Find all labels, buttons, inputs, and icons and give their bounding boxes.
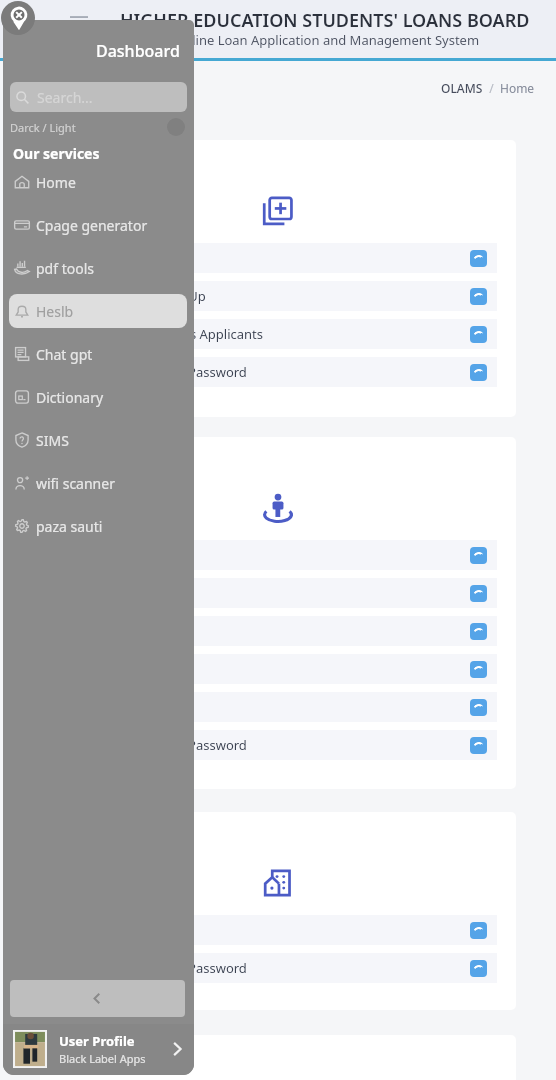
staticText: Our services bbox=[13, 144, 100, 163]
button[interactable]: Dictionary bbox=[9, 380, 187, 414]
staticText: Online Loan Application and Management S… bbox=[174, 31, 480, 49]
button[interactable]: Menu bbox=[66, 8, 92, 34]
button[interactable]: Loan Application bbox=[59, 243, 497, 273]
button[interactable]: User Profile bbox=[3, 1025, 194, 1073]
button[interactable]: SIMS bbox=[9, 423, 187, 457]
staticText: HIGHER EDUCATION STUDENTS' LOANS BOARD bbox=[120, 8, 530, 33]
staticText: pdf tools bbox=[36, 259, 94, 278]
staticText: Black Label Apps bbox=[59, 1051, 146, 1066]
button[interactable]: Retrieve Forgotten Password bbox=[59, 357, 497, 387]
staticText: paza sauti bbox=[36, 517, 103, 536]
button[interactable]: Retrieve Forgotten Password bbox=[59, 730, 497, 760]
button[interactable]: paza sauti bbox=[9, 509, 187, 543]
staticText: OLAMS bbox=[441, 80, 483, 96]
other: Open Retrieve Forgotten Password bbox=[470, 737, 487, 754]
button[interactable]: Loan Application bbox=[59, 540, 497, 570]
staticText: Cpage generator bbox=[36, 216, 148, 235]
other: Open Continuing Students Applicants bbox=[470, 326, 487, 343]
other: Open Verification bbox=[470, 699, 487, 716]
button[interactable]: Heslb bbox=[9, 294, 187, 328]
button[interactable]: Verification bbox=[59, 692, 497, 722]
button[interactable]: Sign Up bbox=[59, 616, 497, 646]
button[interactable]: Search... bbox=[10, 82, 187, 112]
staticText: Continuing Students Applicants bbox=[71, 325, 264, 343]
button[interactable]: Institution Portal bbox=[59, 915, 497, 945]
button[interactable]: Home bbox=[9, 165, 187, 199]
button[interactable]: Toggle dark light theme bbox=[167, 118, 185, 136]
staticText: Retrieve Forgotten Password bbox=[71, 959, 247, 977]
staticText: Chat gpt bbox=[36, 345, 93, 364]
staticText: Darck / Light bbox=[10, 120, 76, 135]
staticText: Search... bbox=[37, 88, 93, 107]
button[interactable]: Retrieve Forgotten Password bbox=[59, 953, 497, 983]
button[interactable]: Close drawer bbox=[1, 1, 35, 35]
button[interactable]: Continuing Students Applicants bbox=[59, 319, 497, 349]
staticText: Heslb bbox=[36, 302, 74, 321]
other: Open Sign Up bbox=[470, 623, 487, 640]
button[interactable]: wifi scanner bbox=[9, 466, 187, 500]
other: Open Loan Repayment bbox=[470, 661, 487, 678]
staticText: Home bbox=[500, 80, 535, 96]
other: Open Retrieve Forgotten Password bbox=[470, 364, 487, 381]
staticText: User Profile bbox=[59, 1032, 135, 1050]
staticText: Retrieve Forgotten Password bbox=[71, 736, 247, 754]
button[interactable]: Check Status bbox=[59, 578, 497, 608]
button[interactable]: Loan Repayment bbox=[59, 654, 497, 684]
other: Open Check Status bbox=[470, 585, 487, 602]
other: Open Institution Portal bbox=[470, 922, 487, 939]
button[interactable]: Collapse sidebar bbox=[10, 980, 185, 1017]
other: Open Loan Application bbox=[470, 250, 487, 267]
button[interactable]: Cpage generator bbox=[9, 208, 187, 242]
button[interactable]: Loan Status Follow Up bbox=[59, 281, 497, 311]
button[interactable]: pdf tools bbox=[9, 251, 187, 285]
staticText: Retrieve Forgotten Password bbox=[71, 363, 247, 381]
staticText: Dashboard bbox=[96, 40, 180, 62]
other: Open Loan Status Follow Up bbox=[470, 288, 487, 305]
staticText: / bbox=[483, 80, 500, 96]
other: Open Loan Application bbox=[470, 547, 487, 564]
staticText: Dictionary bbox=[36, 388, 104, 407]
staticText: SIMS bbox=[36, 431, 69, 450]
staticText: Loan Status Follow Up bbox=[71, 287, 206, 305]
staticText: Home bbox=[36, 173, 76, 192]
staticText: Loan Application bbox=[71, 249, 173, 267]
button[interactable]: Chat gpt bbox=[9, 337, 187, 371]
other: Open Retrieve Forgotten Password bbox=[470, 960, 487, 977]
staticText: wifi scanner bbox=[36, 474, 115, 493]
